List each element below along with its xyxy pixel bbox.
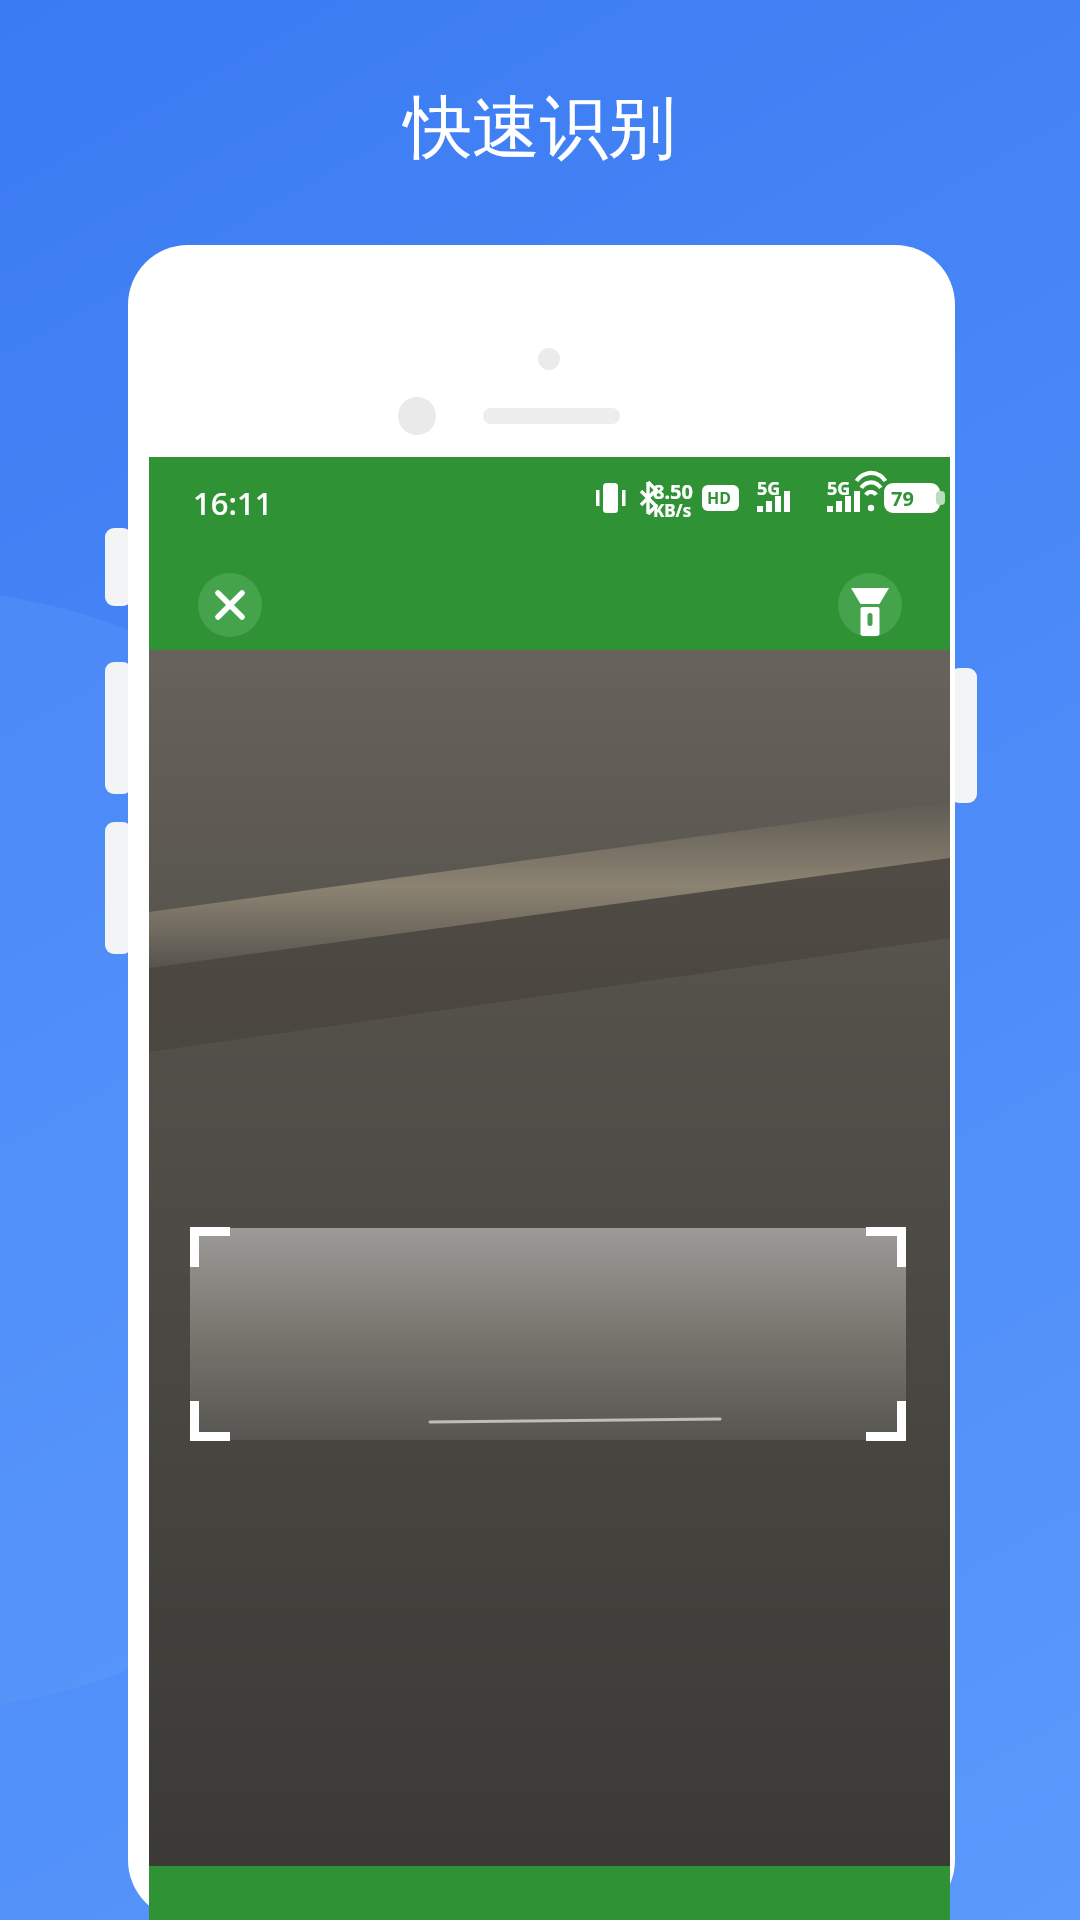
staticText: 快速识别: [404, 86, 676, 172]
staticText: 5G: [757, 476, 781, 501]
staticText: 5G: [827, 476, 851, 501]
staticText: 8.50: [653, 478, 693, 505]
staticText: HD: [707, 487, 731, 509]
staticText: 16:11: [193, 482, 273, 524]
button[interactable]: Flashlight: [838, 573, 902, 637]
button[interactable]: Close: [198, 573, 262, 637]
staticText: KB/s: [653, 499, 692, 522]
staticText: 79: [891, 485, 914, 512]
